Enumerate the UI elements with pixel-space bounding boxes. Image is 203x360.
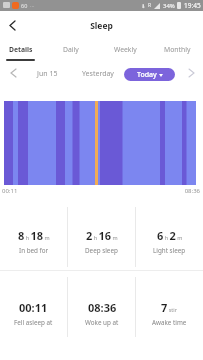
staticText: Today: [137, 70, 157, 80]
staticText: Sleep: [0, 20, 203, 32]
button[interactable]: 7 stir: [136, 282, 203, 344]
button[interactable]: Monthly: [153, 41, 201, 58]
button[interactable]: 08:36: [68, 282, 135, 344]
staticText: ...: [30, 1, 35, 8]
staticText: Daily: [63, 45, 79, 54]
button[interactable]: Details: [0, 41, 45, 58]
staticText: 08:36: [88, 300, 117, 315]
staticText: 7 stir: [161, 300, 178, 315]
button[interactable]: [184, 66, 198, 80]
staticText: Woke up at: [85, 318, 119, 327]
staticText: 00:11: [2, 187, 18, 195]
button[interactable]: Daily: [47, 41, 95, 58]
staticText: 08:36: [0, 187, 200, 195]
staticText: Awake time: [152, 318, 187, 327]
staticText: Fell asleep at: [14, 318, 53, 327]
staticText: 00:11: [19, 300, 48, 315]
staticText: 60: [21, 2, 28, 9]
button[interactable]: [6, 66, 20, 80]
staticText: Deep sleep: [85, 246, 118, 255]
button[interactable]: 2 h 16 m: [68, 210, 135, 272]
staticText: ⬇: [141, 3, 146, 9]
staticText: In bed for: [19, 246, 49, 255]
button[interactable]: 6 h 2 m: [136, 210, 203, 272]
staticText: R: [148, 2, 152, 9]
staticText: Details: [9, 45, 33, 54]
button[interactable]: 8 h 18 m: [0, 210, 67, 272]
staticText: 19:45: [184, 1, 201, 10]
button[interactable]: 00:11: [0, 282, 67, 344]
button[interactable]: Yesterday: [82, 69, 114, 79]
staticText: Light sleep: [153, 246, 186, 255]
button[interactable]: Today: [124, 68, 175, 81]
button[interactable]: Jun 15: [37, 69, 58, 79]
staticText: 6 h 2 m: [157, 228, 183, 243]
button[interactable]: [3, 16, 21, 34]
button[interactable]: Weekly: [101, 41, 149, 58]
staticText: Weekly: [114, 45, 137, 54]
staticText: 2 h 16 m: [86, 228, 118, 243]
staticText: 34%: [163, 2, 175, 10]
staticText: 8 h 18 m: [18, 228, 50, 243]
staticText: Monthly: [164, 45, 191, 54]
